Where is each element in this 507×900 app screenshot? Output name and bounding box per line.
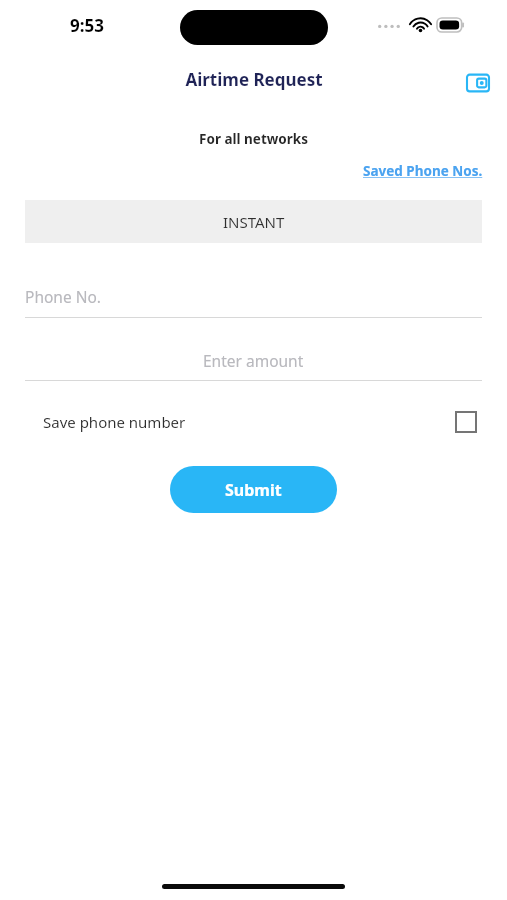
button[interactable]: Enter amount — [25, 340, 482, 380]
staticText: INSTANT — [223, 212, 285, 232]
staticText: Enter amount — [203, 350, 304, 371]
button[interactable]: Saved Phone Nos. — [363, 162, 483, 180]
button[interactable]: Phone No. — [25, 275, 482, 317]
button[interactable]: Save phone number — [25, 404, 482, 440]
staticText: Airtime Request — [185, 68, 323, 91]
staticText: Save phone number — [43, 412, 186, 432]
button[interactable]: INSTANT — [25, 200, 482, 243]
button[interactable]: Wallet — [461, 68, 495, 98]
staticText: 9:53 — [70, 14, 104, 37]
staticText: For all networks — [0, 130, 507, 148]
button[interactable]: Submit — [170, 466, 337, 513]
staticText: Saved Phone Nos. — [363, 162, 483, 180]
staticText: Phone No. — [25, 286, 101, 307]
staticText: Submit — [225, 479, 282, 501]
